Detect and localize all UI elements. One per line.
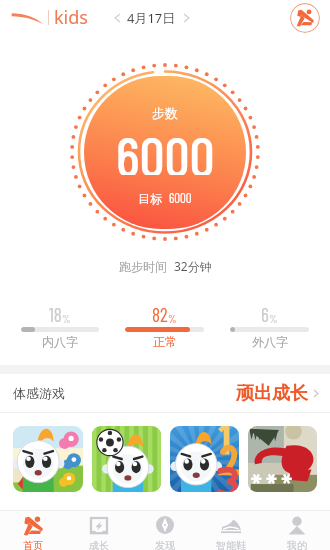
staticText: 82	[152, 303, 168, 326]
staticText: 内八字	[42, 334, 78, 349]
button[interactable]: Previous day	[110, 11, 124, 25]
button[interactable]: 18	[8, 303, 112, 349]
staticText: %	[168, 312, 177, 325]
staticText: 18	[49, 303, 62, 326]
staticText: 6000	[116, 121, 215, 175]
button[interactable]: 6	[217, 303, 322, 349]
button[interactable]: 顽出成长	[236, 382, 318, 405]
button[interactable]: 我的	[264, 511, 330, 550]
button[interactable]: 发现	[132, 511, 198, 550]
staticText: %	[269, 312, 278, 325]
staticText: %	[62, 312, 71, 325]
staticText: 体感游戏	[13, 385, 65, 401]
button[interactable]: Start running	[290, 3, 320, 33]
staticText: 4月17日	[127, 9, 176, 27]
staticText: 外八字	[252, 334, 288, 349]
button[interactable]: 智能鞋	[198, 511, 264, 550]
staticText: 顽出成长	[236, 382, 308, 405]
button[interactable]	[13, 426, 83, 492]
button[interactable]: 首页	[0, 511, 66, 550]
staticText: 6	[261, 303, 269, 326]
staticText: 我的	[287, 539, 307, 550]
button[interactable]	[170, 426, 239, 492]
staticText: kids	[54, 5, 88, 30]
staticText: 步数	[152, 105, 178, 121]
staticText: 发现	[155, 539, 175, 550]
button[interactable]	[92, 426, 161, 492]
button[interactable]: Next day	[179, 11, 193, 25]
button[interactable]: 82	[112, 303, 217, 349]
button[interactable]	[248, 426, 317, 492]
staticText: 智能鞋	[216, 539, 246, 550]
staticText: 成长	[89, 539, 109, 550]
staticText: 正常	[153, 334, 177, 349]
staticText: 首页	[23, 539, 43, 550]
button[interactable]: 成长	[66, 511, 132, 550]
staticText: 跑步时间	[119, 259, 167, 274]
staticText: 6000	[169, 190, 192, 206]
staticText: 目标	[138, 191, 162, 206]
staticText: 32分钟	[174, 258, 212, 274]
